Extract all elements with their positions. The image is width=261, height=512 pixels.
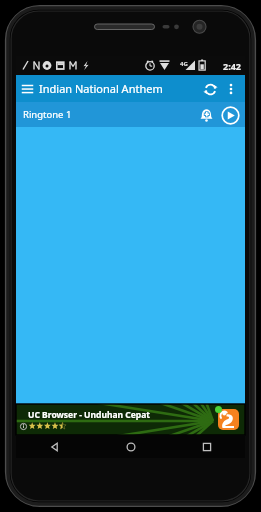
staticText: UC Browser - Unduhan Cepat <box>28 409 150 421</box>
button[interactable]: Recent apps <box>169 435 245 458</box>
staticText: Indian National Anthem <box>39 81 199 96</box>
button[interactable]: Set as ringtone <box>194 103 218 127</box>
button[interactable]: UC Browser - Unduhan Cepat <box>16 404 245 435</box>
button[interactable]: Back <box>16 435 93 458</box>
button[interactable]: Play <box>218 103 242 127</box>
button[interactable]: Ringtone 1 <box>16 102 245 127</box>
staticText: 4G <box>180 60 188 68</box>
button[interactable]: More options <box>221 79 241 99</box>
button[interactable]: Open navigation drawer <box>19 81 35 97</box>
staticText: Ringtone 1 <box>23 108 194 121</box>
button[interactable]: Home <box>93 435 169 458</box>
button[interactable]: Refresh <box>199 78 221 100</box>
staticText: 2:42 <box>223 60 241 72</box>
